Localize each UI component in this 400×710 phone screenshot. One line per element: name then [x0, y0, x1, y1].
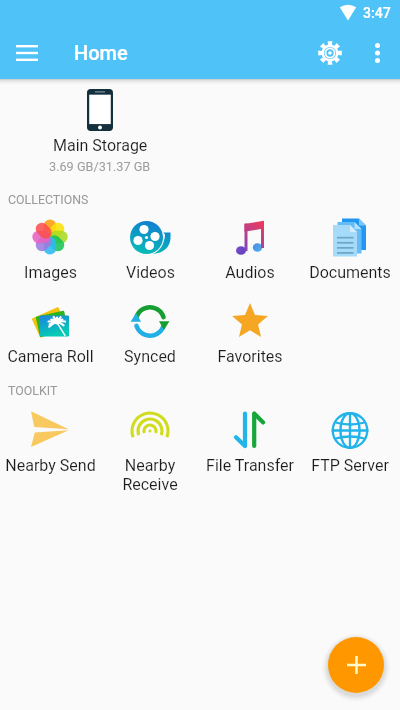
button[interactable]: Nearby Receive	[100, 403, 200, 506]
staticText: 3.69 GB/31.37 GB	[49, 159, 151, 174]
button[interactable]: Camera Roll	[0, 294, 100, 378]
button[interactable]: Open navigation drawer	[0, 26, 54, 79]
staticText: 3:47	[363, 5, 391, 21]
staticText: Home	[74, 41, 128, 64]
staticText: TOOLKIT	[8, 383, 58, 398]
button[interactable]: Videos	[100, 210, 200, 294]
staticText: Main Storage	[53, 136, 148, 155]
button[interactable]: Settings	[306, 29, 354, 77]
staticText: COLLECTIONS	[8, 192, 89, 207]
button[interactable]: Main Storage	[0, 89, 200, 174]
button[interactable]: Documents	[300, 210, 400, 294]
button[interactable]: More options	[354, 30, 400, 76]
staticText: Camera Roll	[7, 347, 94, 366]
staticText: Audios	[225, 263, 275, 282]
staticText: File Transfer	[206, 456, 294, 475]
staticText: Synced	[124, 347, 176, 366]
staticText: Videos	[126, 263, 175, 282]
button[interactable]: Audios	[200, 210, 300, 294]
staticText: Nearby Receive	[100, 456, 200, 494]
button[interactable]: Add	[328, 637, 384, 693]
staticText: Favorites	[217, 347, 283, 366]
button[interactable]: Images	[0, 210, 100, 294]
button[interactable]: FTP Server	[300, 403, 400, 487]
staticText: Nearby Send	[5, 456, 96, 475]
button[interactable]: Nearby Send	[0, 403, 100, 487]
button[interactable]: Synced	[100, 294, 200, 378]
button[interactable]: File Transfer	[200, 403, 300, 487]
staticText: Images	[24, 263, 77, 282]
button[interactable]: Favorites	[200, 294, 300, 378]
staticText: Documents	[309, 263, 391, 282]
staticText: FTP Server	[311, 456, 389, 475]
